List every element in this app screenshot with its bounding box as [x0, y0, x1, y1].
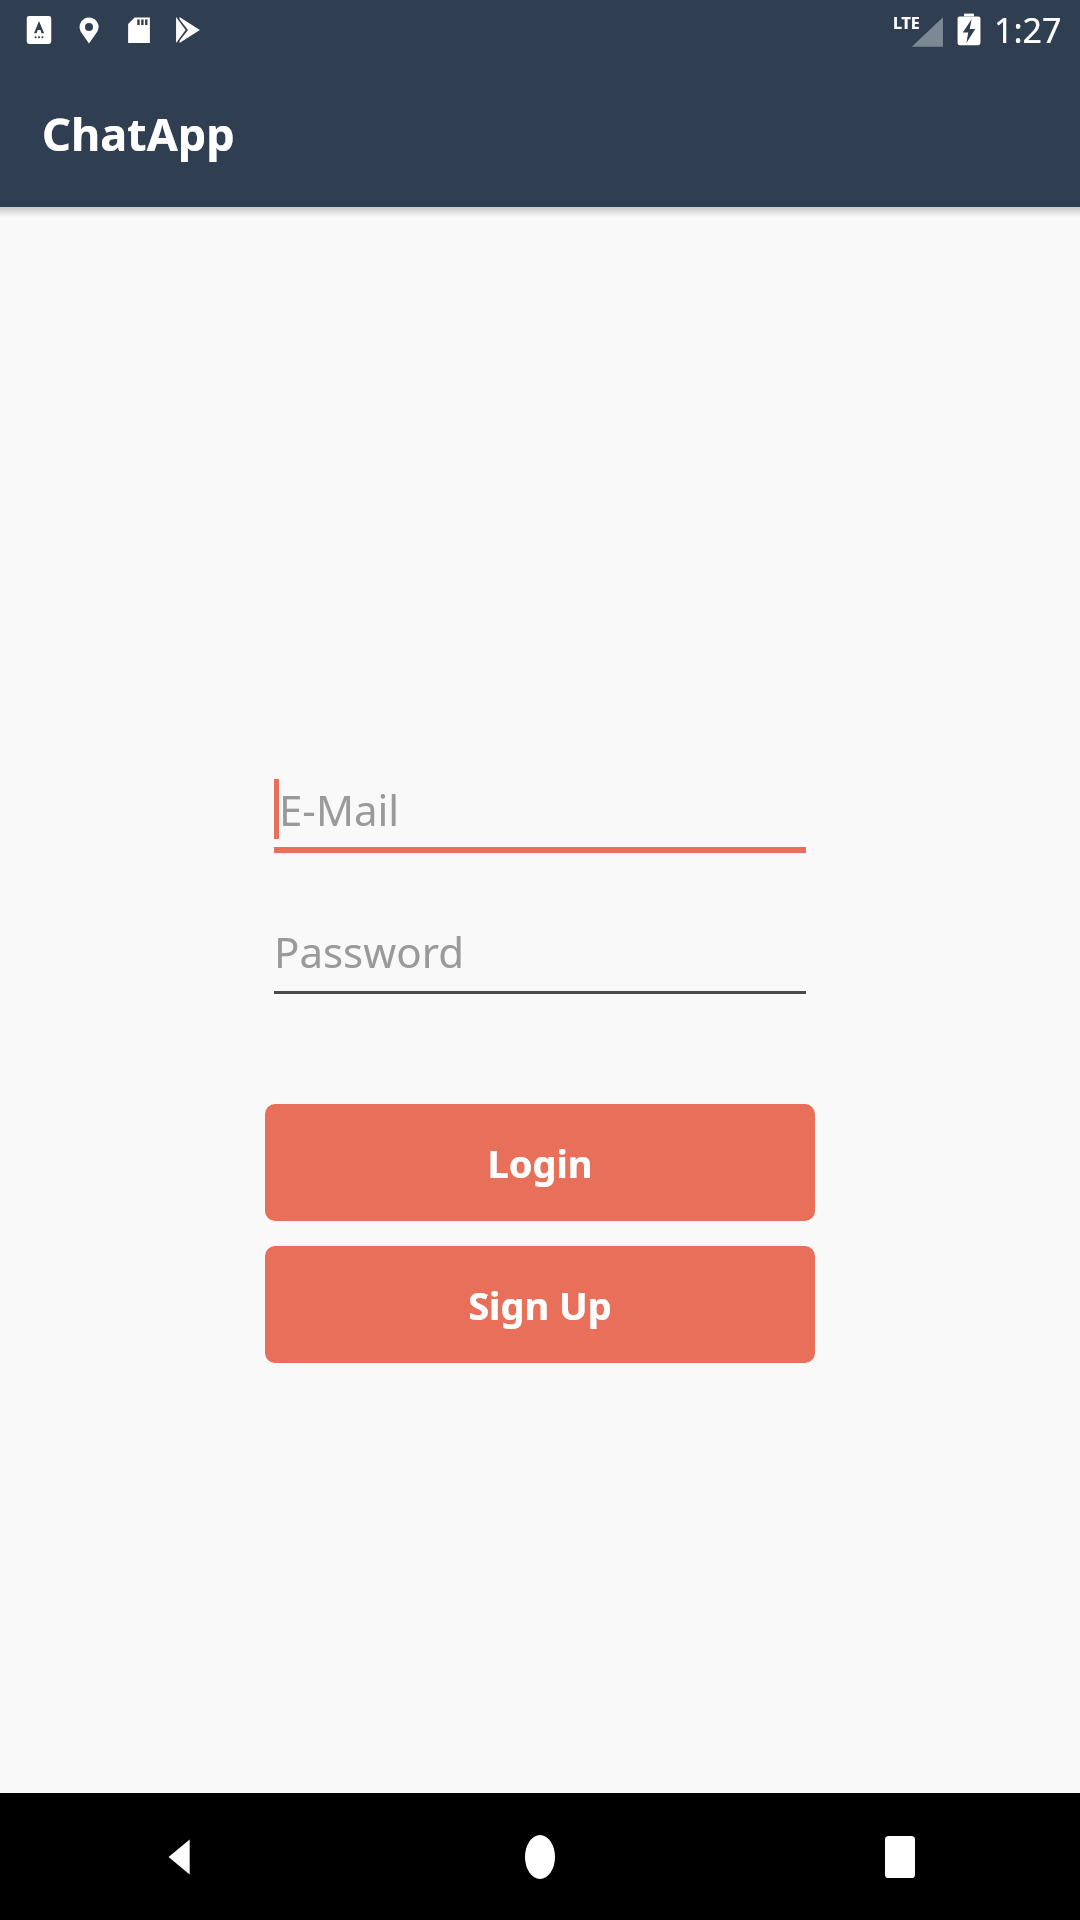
staticText: Login: [487, 1137, 593, 1189]
staticText: 1:27: [994, 7, 1062, 53]
button[interactable]: Home: [360, 1793, 720, 1920]
button[interactable]: E-Mail: [274, 761, 806, 853]
button[interactable]: Back: [0, 1793, 360, 1920]
staticText: LTE: [893, 12, 920, 34]
button[interactable]: Login: [265, 1104, 815, 1221]
button[interactable]: Recent apps: [720, 1793, 1080, 1920]
staticText: Sign Up: [468, 1279, 612, 1331]
staticText: Password: [274, 923, 464, 980]
button[interactable]: Sign Up: [265, 1246, 815, 1363]
staticText: ChatApp: [42, 103, 235, 164]
button[interactable]: Password: [274, 902, 806, 994]
staticText: E-Mail: [279, 781, 400, 838]
